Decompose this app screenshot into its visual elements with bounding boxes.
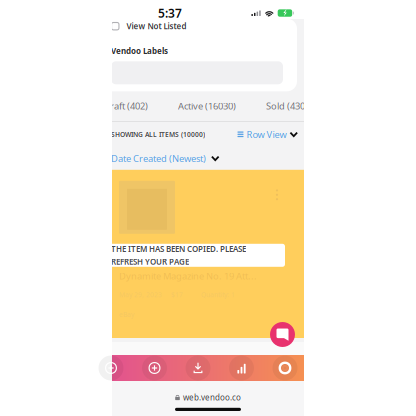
staticText: Date Created (Newest): [111, 152, 206, 164]
staticText: THE ITEM HAS BEEN COPIED. PLEASE: [111, 244, 246, 254]
staticText: REFRESH YOUR PAGE: [111, 256, 189, 267]
staticText: Sold (4301): [266, 100, 313, 112]
staticText: web.vendoo.co: [183, 392, 241, 403]
button[interactable]: Draft (402): [103, 94, 148, 118]
button[interactable]: Active (16030): [178, 94, 236, 118]
staticText: Row View: [246, 128, 286, 140]
staticText: Dynamite Magazine No. 19 Att...: [119, 270, 257, 282]
button[interactable]: Chat support: [270, 322, 295, 347]
staticText: Draft (402): [103, 100, 148, 112]
staticText: Active (16030): [178, 100, 236, 112]
staticText: Vendoo Labels: [111, 46, 168, 56]
button[interactable]: Date Created (Newest): [111, 148, 219, 168]
button[interactable]: Refresh: [96, 355, 126, 381]
staticText: SHOWING ALL ITEMS (10000): [111, 130, 205, 139]
button[interactable]: Row View: [237, 124, 298, 144]
button[interactable]: Sold (4301): [266, 94, 313, 118]
staticText: 5:37: [158, 5, 182, 21]
button[interactable]: Analytics: [226, 355, 256, 381]
button[interactable]: Add item: [139, 355, 169, 381]
button[interactable]: Settings: [270, 355, 300, 381]
staticText: View Not Listed: [126, 21, 186, 31]
button[interactable]: Import: [183, 355, 213, 381]
